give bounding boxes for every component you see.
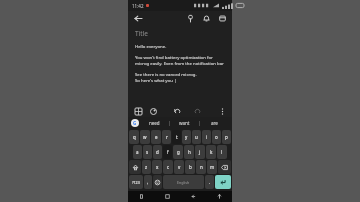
button[interactable]: English xyxy=(163,175,204,189)
button[interactable]: Back xyxy=(180,191,206,202)
staticText: g xyxy=(177,149,180,155)
button[interactable]: u xyxy=(192,130,201,144)
button[interactable]: f xyxy=(163,145,172,159)
staticText: G xyxy=(133,120,137,126)
button[interactable]: n xyxy=(196,160,206,174)
button[interactable]: Google xyxy=(131,119,139,127)
button[interactable]: i xyxy=(202,130,211,144)
staticText: See there is no vanced microg. xyxy=(135,71,197,77)
button[interactable]: Emoji xyxy=(153,175,162,189)
staticText: z xyxy=(145,164,148,170)
button[interactable]: d xyxy=(153,145,162,159)
button[interactable]: b xyxy=(185,160,195,174)
button[interactable]: l xyxy=(217,145,227,159)
staticText: , xyxy=(147,179,149,185)
staticText: u xyxy=(195,134,198,140)
staticText: y xyxy=(185,134,188,140)
staticText: l xyxy=(221,149,223,155)
button[interactable]: t xyxy=(172,130,181,144)
button[interactable]: a xyxy=(133,145,142,159)
staticText: e xyxy=(155,134,158,140)
staticText: You won't find battery optimization for xyxy=(135,54,213,60)
staticText: q xyxy=(133,134,136,140)
staticText: want xyxy=(179,120,190,126)
staticText: 11:42 xyxy=(132,3,144,9)
staticText: h xyxy=(188,149,191,155)
staticText: w xyxy=(143,134,147,140)
staticText: v xyxy=(178,164,181,170)
staticText: a xyxy=(136,149,139,155)
staticText: d xyxy=(156,149,159,155)
button[interactable]: j xyxy=(195,145,205,159)
staticText: x xyxy=(156,164,159,170)
staticText: o xyxy=(215,134,218,140)
button[interactable]: Keyboard xyxy=(206,191,232,202)
staticText: t xyxy=(176,134,178,140)
staticText: m xyxy=(210,164,215,170)
button[interactable]: Shift xyxy=(129,160,141,174)
button[interactable]: Reminder xyxy=(201,13,211,23)
button[interactable]: need xyxy=(139,117,169,129)
button[interactable]: Enter xyxy=(215,175,231,189)
staticText: Hello everyone. xyxy=(135,43,167,49)
button[interactable]: are xyxy=(200,117,229,129)
button[interactable]: ?123 xyxy=(129,175,143,189)
staticText: k xyxy=(210,149,213,155)
staticText: Title xyxy=(135,29,148,38)
button[interactable]: o xyxy=(212,130,221,144)
button[interactable]: m xyxy=(207,160,217,174)
staticText: English xyxy=(177,180,190,185)
button[interactable]: Undo xyxy=(172,106,182,116)
staticText: f xyxy=(167,149,169,155)
staticText: b xyxy=(189,164,192,170)
button[interactable]: z xyxy=(142,160,151,174)
button[interactable]: r xyxy=(162,130,171,144)
button[interactable]: Backspace xyxy=(218,160,231,174)
button[interactable]: want xyxy=(170,117,199,129)
button[interactable]: Archive xyxy=(217,13,227,23)
button[interactable]: g xyxy=(173,145,183,159)
staticText: s xyxy=(146,149,149,155)
button[interactable]: Pin xyxy=(185,13,195,23)
button[interactable]: More options xyxy=(217,106,227,116)
button[interactable]: Menu xyxy=(128,191,154,202)
staticText: are xyxy=(211,120,218,126)
button[interactable]: x xyxy=(152,160,162,174)
button[interactable]: e xyxy=(151,130,161,144)
staticText: j xyxy=(199,149,201,155)
button[interactable]: w xyxy=(140,130,150,144)
button[interactable]: . xyxy=(205,175,214,189)
staticText: So here's what you | xyxy=(135,77,177,83)
button[interactable]: Back xyxy=(133,13,143,23)
button[interactable]: c xyxy=(163,160,173,174)
button[interactable]: , xyxy=(144,175,152,189)
staticText: p xyxy=(225,134,228,140)
button[interactable]: q xyxy=(129,130,139,144)
staticText: need xyxy=(149,120,160,126)
button[interactable]: y xyxy=(182,130,191,144)
button[interactable]: k xyxy=(206,145,216,159)
button[interactable]: h xyxy=(184,145,194,159)
staticText: r xyxy=(166,134,168,140)
button[interactable]: p xyxy=(222,130,231,144)
button[interactable]: Home xyxy=(154,191,180,202)
button[interactable]: s xyxy=(143,145,152,159)
staticText: c xyxy=(167,164,170,170)
button[interactable]: Redo xyxy=(192,106,202,116)
staticText: n xyxy=(200,164,203,170)
button[interactable]: Palette xyxy=(148,106,158,116)
button[interactable]: Add xyxy=(133,106,143,116)
staticText: ?123 xyxy=(132,180,140,185)
staticText: . xyxy=(209,179,211,185)
staticText: i xyxy=(206,134,208,140)
button[interactable]: v xyxy=(174,160,184,174)
staticText: microg easily. Even from the notificatio… xyxy=(135,60,224,66)
